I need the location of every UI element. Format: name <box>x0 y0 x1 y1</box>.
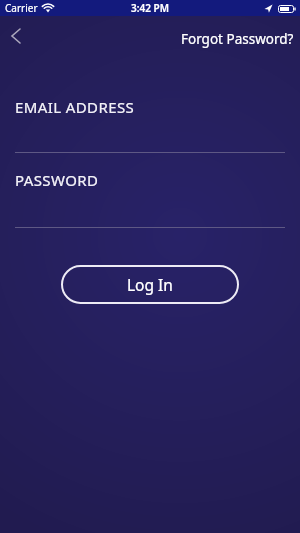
staticText: 3:42 PM <box>131 1 169 15</box>
button[interactable]: Log In <box>61 265 239 304</box>
staticText: Forgot Password? <box>181 30 294 48</box>
staticText: Carrier <box>5 1 38 15</box>
button[interactable] <box>3 23 29 49</box>
staticText: EMAIL ADDRESS <box>15 97 135 117</box>
staticText: Log In <box>127 274 173 295</box>
button[interactable]: Forgot Password? <box>181 30 294 48</box>
staticText: PASSWORD <box>15 170 99 190</box>
